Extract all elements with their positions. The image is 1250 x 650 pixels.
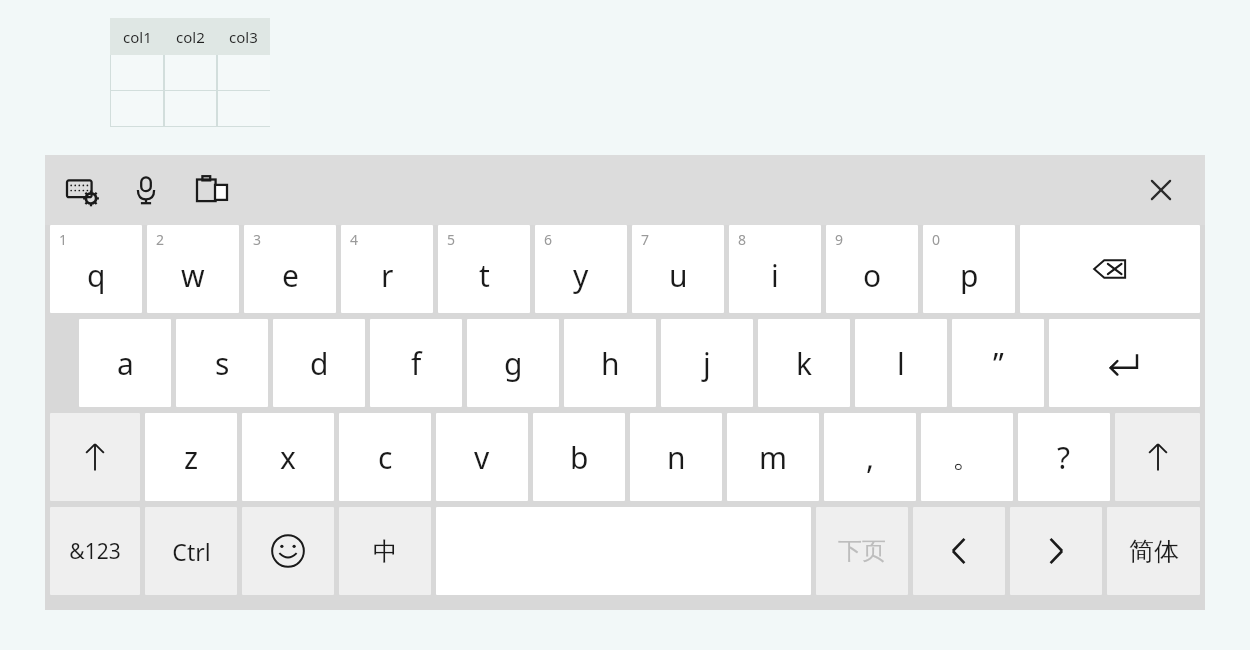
button[interactable]: 8 (729, 225, 821, 313)
staticText: d (310, 343, 329, 384)
button[interactable]: s (176, 319, 268, 407)
staticText: c (378, 437, 393, 478)
button[interactable]: 2 (147, 225, 239, 313)
button[interactable]: 7 (632, 225, 724, 313)
staticText: e (282, 255, 299, 296)
button[interactable]: Next (1010, 507, 1102, 595)
button[interactable]: b (533, 413, 625, 501)
staticText: o (863, 255, 882, 296)
staticText: col1 (123, 27, 152, 47)
button[interactable]: 下页 (816, 507, 908, 595)
staticText: q (87, 255, 106, 296)
staticText: s (215, 343, 230, 384)
staticText: y (573, 255, 589, 296)
button[interactable]: k (758, 319, 850, 407)
staticText: 中 (373, 536, 398, 567)
staticText: ? (1057, 437, 1071, 478)
button[interactable]: 5 (438, 225, 530, 313)
button[interactable]: Emoji (242, 507, 334, 595)
staticText: p (960, 255, 979, 296)
button[interactable]: Previous (913, 507, 1005, 595)
button[interactable]: h (564, 319, 656, 407)
button[interactable]: Keyboard settings (59, 167, 105, 213)
staticText: h (601, 343, 620, 384)
staticText: l (897, 343, 905, 384)
staticText: 3 (253, 230, 262, 249)
button[interactable]: j (661, 319, 753, 407)
staticText: g (504, 343, 523, 384)
button[interactable]: 简体 (1107, 507, 1200, 595)
staticText: w (181, 255, 205, 296)
button[interactable]: Backspace (1020, 225, 1200, 313)
staticText: Ctrl (172, 536, 211, 567)
staticText: 4 (350, 230, 359, 249)
staticText: v (474, 437, 490, 478)
staticText: f (411, 343, 422, 384)
button[interactable]: f (370, 319, 462, 407)
staticText: u (669, 255, 688, 296)
button[interactable]: 9 (826, 225, 918, 313)
staticText: r (381, 255, 394, 296)
staticText: 1 (59, 230, 68, 249)
button[interactable]: 0 (923, 225, 1015, 313)
button[interactable]: Voice input (123, 167, 169, 213)
button[interactable]: c (339, 413, 431, 501)
staticText: 7 (641, 230, 650, 249)
staticText: t (479, 255, 490, 296)
staticText: 5 (447, 230, 456, 249)
staticText: x (280, 437, 296, 478)
button[interactable]: m (727, 413, 819, 501)
button[interactable]: Ctrl (145, 507, 237, 595)
staticText: j (703, 343, 711, 384)
staticText: 9 (835, 230, 844, 249)
staticText: 下页 (838, 536, 886, 566)
button[interactable]: ” (952, 319, 1044, 407)
button[interactable]: Clipboard (189, 167, 235, 213)
staticText: b (570, 437, 589, 478)
staticText: 6 (544, 230, 553, 249)
button[interactable]: Enter (1049, 319, 1200, 407)
staticText: a (117, 343, 134, 384)
staticText: 。 (952, 438, 982, 476)
button[interactable]: 4 (341, 225, 433, 313)
staticText: n (667, 437, 686, 478)
button[interactable]: 3 (244, 225, 336, 313)
button[interactable]: Close keyboard (1139, 168, 1183, 212)
staticText: 8 (738, 230, 747, 249)
button[interactable]: g (467, 319, 559, 407)
button[interactable]: v (436, 413, 528, 501)
staticText: 简体 (1129, 536, 1179, 567)
button[interactable]: x (242, 413, 334, 501)
button[interactable]: 中 (339, 507, 431, 595)
button[interactable]: n (630, 413, 722, 501)
staticText: ” (993, 343, 1004, 384)
button[interactable]: &123 (50, 507, 140, 595)
staticText: 0 (932, 230, 941, 249)
staticText: z (184, 437, 199, 478)
staticText: i (771, 255, 779, 296)
button[interactable]: Shift (1115, 413, 1200, 501)
staticText: m (759, 437, 788, 478)
button[interactable]: , (824, 413, 916, 501)
staticText: &123 (69, 537, 121, 566)
button[interactable]: 6 (535, 225, 627, 313)
button[interactable]: d (273, 319, 365, 407)
staticText: , (866, 437, 875, 478)
staticText: col3 (229, 27, 258, 47)
button[interactable]: z (145, 413, 237, 501)
button[interactable]: ? (1018, 413, 1110, 501)
button[interactable]: a (79, 319, 171, 407)
button[interactable]: 1 (50, 225, 142, 313)
button[interactable]: l (855, 319, 947, 407)
button[interactable]: Shift (50, 413, 140, 501)
staticText: col2 (176, 27, 205, 47)
button[interactable]: 。 (921, 413, 1013, 501)
staticText: 2 (156, 230, 165, 249)
staticText: k (796, 343, 813, 384)
